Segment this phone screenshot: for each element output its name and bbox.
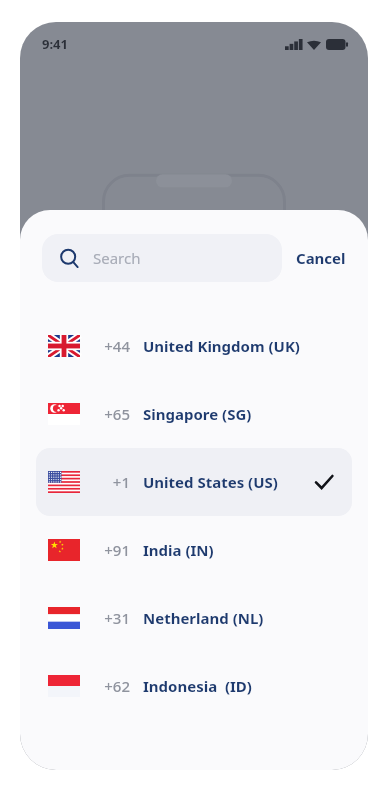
button[interactable]: Search [42,234,282,282]
button[interactable]: +65 [36,380,352,448]
staticText: 9:41 [42,35,68,53]
staticText: +62 [94,676,130,696]
staticText: United States (US) [143,472,278,492]
staticText: Indonesia (ID) [143,676,252,696]
staticText: +91 [94,540,130,560]
staticText: India (IN) [143,540,214,560]
staticText: Singapore (SG) [143,404,252,424]
staticText: United Kingdom (UK) [143,336,300,356]
staticText: Search [93,248,141,268]
staticText: +1 [94,472,130,492]
staticText: +31 [94,608,130,628]
button[interactable]: Cancel [282,242,346,274]
staticText: Cancel [296,248,346,268]
staticText: +44 [94,336,130,356]
button[interactable]: +44 [36,312,352,380]
staticText: Netherland (NL) [143,608,264,628]
button[interactable]: +1 [36,448,352,516]
other: Selected [314,472,334,492]
button[interactable]: +62 [36,652,352,720]
button[interactable]: +91 [36,516,352,584]
button[interactable]: +31 [36,584,352,652]
staticText: +65 [94,404,130,424]
